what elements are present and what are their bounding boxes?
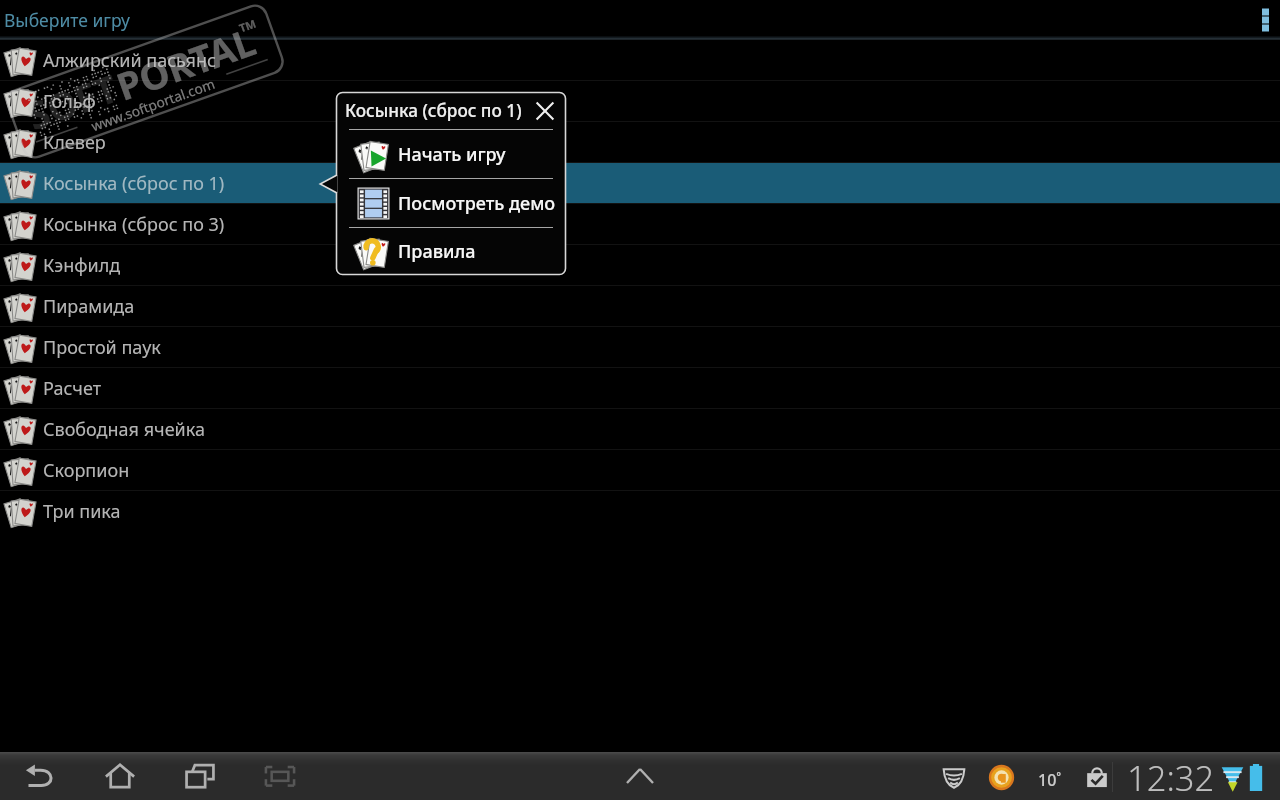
button[interactable]: Notifications [940,752,1120,800]
button[interactable]: Свободная ячейка [0,409,1280,450]
button[interactable]: More options [1250,0,1280,40]
button[interactable]: Косынка (сброс по 1) [0,163,1280,204]
staticText: Алжирский пасьянс [43,48,216,73]
button[interactable]: Скорпион [0,450,1280,491]
staticText: Пирамида [43,294,135,319]
button[interactable]: Косынка (сброс по 3) [0,204,1280,245]
button[interactable]: Три пика [0,491,1280,532]
staticText: SOFT [20,62,125,141]
staticText: Три пика [43,499,121,524]
staticText: Скорпион [43,458,130,483]
button[interactable]: Screenshot [240,752,320,800]
button[interactable]: Show menu [612,752,668,800]
button[interactable]: Посмотреть демо [336,179,566,227]
button[interactable]: Правила [336,228,566,275]
button[interactable]: Расчет [0,368,1280,409]
button[interactable]: Гольф [0,81,1280,122]
button[interactable]: Клевер [0,122,1280,163]
staticText: Клевер [43,130,106,155]
staticText: Начать игру [398,142,506,167]
button[interactable]: Начать игру [336,130,566,178]
button[interactable]: Простой паук [0,327,1280,368]
button[interactable]: Recent apps [160,752,240,800]
button[interactable]: Алжирский пасьянс [0,40,1280,81]
staticText: TM [237,16,258,35]
staticText: Простой паук [43,335,161,360]
staticText: 10˚ [1038,769,1062,791]
button[interactable]: Close [532,98,558,124]
staticText: 12:32 [1127,754,1215,800]
staticText: Косынка (сброс по 1) [43,171,225,196]
staticText: Свободная ячейка [43,417,205,442]
staticText: Косынка (сброс по 3) [43,212,225,237]
staticText: PORTAL [110,15,262,112]
button[interactable]: Пирамида [0,286,1280,327]
button[interactable]: Back [0,752,80,800]
staticText: Правила [398,239,476,264]
staticText: Выберите игру [4,8,130,32]
staticText: Посмотреть демо [398,191,556,216]
staticText: Кэнфилд [43,253,121,278]
staticText: Расчет [43,376,102,401]
button[interactable]: Home [80,752,160,800]
staticText: Косынка (сброс по 1) [345,99,522,122]
button[interactable]: Кэнфилд [0,245,1280,286]
staticText: Гольф [43,89,96,114]
staticText: www.softportal.com [89,74,217,135]
